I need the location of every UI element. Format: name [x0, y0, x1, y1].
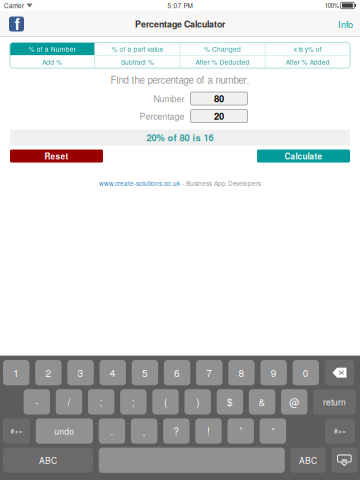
staticText: 7: [206, 365, 212, 380]
staticText: 80: [214, 92, 224, 105]
staticText: &: [259, 395, 266, 409]
staticText: 5:07 PM: [167, 1, 192, 10]
button[interactable]: 1: [3, 360, 29, 385]
button[interactable]: ;: [120, 389, 146, 414]
button[interactable]: ,: [131, 418, 157, 444]
staticText: 20: [214, 109, 224, 123]
button[interactable]: Info: [328, 11, 360, 36]
staticText: Carrier: [4, 1, 24, 10]
button[interactable]: :: [88, 389, 114, 414]
button[interactable]: 2: [35, 360, 62, 385]
staticText: Info: [338, 17, 353, 30]
staticText: !: [207, 424, 210, 438]
staticText: 5: [142, 365, 148, 380]
button[interactable]: More symbols: [325, 418, 355, 444]
staticText: #+=: [334, 426, 346, 436]
button[interactable]: 8: [228, 360, 255, 385]
staticText: f: [14, 12, 19, 35]
button[interactable]: &: [249, 389, 275, 414]
staticText: 9: [271, 365, 277, 380]
button[interactable]: % of a Number: [10, 42, 94, 55]
staticText: % of a part value: [111, 44, 163, 53]
staticText: 3: [78, 365, 84, 380]
staticText: www.create-solutions.co.uk: [99, 178, 180, 188]
staticText: ,: [143, 424, 146, 438]
staticText: 100%: [325, 1, 339, 10]
staticText: - Business App Developers: [180, 178, 261, 188]
staticText: After % Added: [286, 57, 330, 67]
button[interactable]: 0: [293, 360, 319, 385]
staticText: @: [289, 395, 299, 409]
staticText: undo: [54, 425, 74, 437]
button[interactable]: 5: [132, 360, 158, 385]
button[interactable]: $: [217, 389, 243, 414]
button[interactable]: Subtract %: [95, 56, 180, 68]
staticText: :: [100, 395, 103, 409]
staticText: Add %: [42, 57, 62, 67]
button[interactable]: www.create-solutions.co.uk: [99, 175, 261, 191]
button[interactable]: Percentage: [190, 109, 247, 122]
staticText: Reset: [44, 150, 68, 162]
button[interactable]: /: [56, 389, 82, 414]
staticText: Calculate: [284, 150, 322, 162]
staticText: Subtract %: [121, 57, 154, 67]
staticText: 8: [238, 365, 244, 380]
button[interactable]: Reset: [10, 149, 103, 162]
staticText: Find the percentage of a number.: [110, 73, 249, 86]
staticText: 20% of 80 is 16: [146, 131, 213, 144]
button[interactable]: % of a part value: [95, 42, 180, 55]
button[interactable]: x is y% of: [265, 42, 350, 55]
button[interactable]: !: [195, 418, 222, 444]
staticText: $: [227, 395, 233, 409]
button[interactable]: ABC: [291, 448, 326, 473]
button[interactable]: 4: [99, 360, 126, 385]
staticText: 1: [13, 365, 19, 380]
button[interactable]: ’: [227, 418, 254, 444]
button[interactable]: ): [184, 389, 211, 414]
staticText: x is y% of: [294, 44, 322, 53]
staticText: 4: [110, 365, 116, 380]
button[interactable]: More symbols: [3, 418, 30, 444]
button[interactable]: return: [313, 389, 356, 414]
button[interactable]: After % Added: [265, 56, 350, 68]
staticText: return: [323, 396, 346, 408]
staticText: 6: [174, 365, 180, 380]
button[interactable]: .: [99, 418, 125, 444]
button[interactable]: Delete: [325, 360, 354, 385]
button[interactable]: After % Deducted: [180, 56, 265, 68]
button[interactable]: ABC: [3, 448, 93, 473]
button[interactable]: 9: [260, 360, 287, 385]
staticText: Percentage: [139, 110, 184, 122]
staticText: ”: [271, 424, 274, 438]
staticText: ABC: [39, 454, 57, 466]
button[interactable]: ”: [260, 418, 286, 444]
button[interactable]: undo: [36, 418, 93, 444]
button[interactable]: Calculate: [257, 149, 350, 162]
button[interactable]: -: [24, 389, 50, 414]
staticText: ;: [132, 395, 135, 409]
button[interactable]: % Changed: [180, 42, 265, 55]
button[interactable]: Hide keyboard: [331, 448, 357, 473]
staticText: Percentage Calculator: [135, 18, 225, 30]
staticText: 2: [45, 365, 51, 380]
staticText: #+=: [10, 426, 22, 436]
button[interactable]: 7: [196, 360, 222, 385]
staticText: ?: [173, 424, 179, 438]
staticText: -: [35, 395, 38, 409]
button[interactable]: ?: [163, 418, 189, 444]
staticText: % Changed: [204, 44, 241, 53]
staticText: % of a Number: [29, 44, 76, 53]
button[interactable]: Number: [190, 92, 247, 105]
button[interactable]: @: [281, 389, 307, 414]
button[interactable]: 6: [164, 360, 190, 385]
staticText: 0: [303, 365, 309, 380]
staticText: ): [196, 395, 199, 409]
staticText: After % Deducted: [196, 57, 250, 67]
staticText: .: [110, 424, 113, 438]
button[interactable]: (: [152, 389, 179, 414]
button[interactable]: 3: [67, 360, 94, 385]
button[interactable]: Add %: [10, 56, 94, 68]
staticText: (: [164, 395, 167, 409]
button[interactable]: Facebook: [0, 11, 32, 36]
